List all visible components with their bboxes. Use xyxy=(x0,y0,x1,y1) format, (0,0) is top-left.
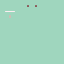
button[interactable]: Workouts xyxy=(27,5,29,7)
button[interactable]: Start xyxy=(9,15,11,18)
button[interactable]: Heart rate xyxy=(35,5,37,7)
